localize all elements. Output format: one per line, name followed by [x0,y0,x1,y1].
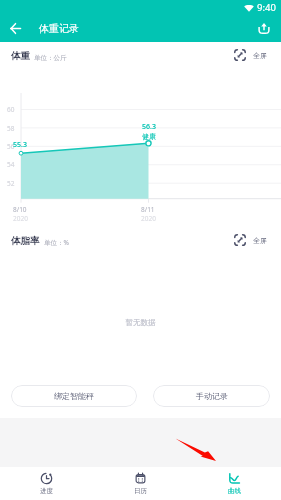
staticText: 9:40 [257,1,276,14]
button[interactable]: Share [253,17,275,39]
staticText: 8/11 [141,205,155,214]
button[interactable]: 全屏 [234,49,267,61]
button[interactable]: 日历 [93,467,187,500]
staticText: 单位：% [44,238,69,247]
staticText: 全屏 [253,51,267,60]
staticText: 手动记录 [196,391,228,401]
button[interactable]: 曲线 [187,467,281,500]
staticText: 体重记录 [39,22,79,35]
staticText: 2020 [141,214,156,223]
staticText: 体脂率 [11,235,40,247]
staticText: 58 [7,124,15,133]
staticText: 绑定智能秤 [54,391,94,401]
staticText: 曲线 [228,487,241,495]
staticText: 日历 [134,487,147,495]
staticText: 56.3 [142,122,156,132]
staticText: 54 [7,160,15,169]
button[interactable]: 手动记录 [153,385,270,407]
staticText: 2020 [13,214,28,223]
staticText: 56 [7,142,15,151]
staticText: 8/10 [13,205,27,214]
button[interactable]: Back [4,17,26,39]
staticText: 55.3 [13,140,27,150]
button[interactable]: 绑定智能秤 [11,385,137,407]
staticText: 暂无数据 [0,318,281,327]
button[interactable]: 全屏 [234,234,267,246]
staticText: 单位：公斤 [34,54,67,62]
staticText: 健康 [142,132,156,141]
staticText: 全屏 [253,236,267,245]
staticText: 60 [7,105,15,114]
staticText: 体重 [11,50,30,62]
staticText: 进度 [40,487,53,495]
button[interactable]: 进度 [0,467,93,500]
staticText: 52 [7,179,15,188]
